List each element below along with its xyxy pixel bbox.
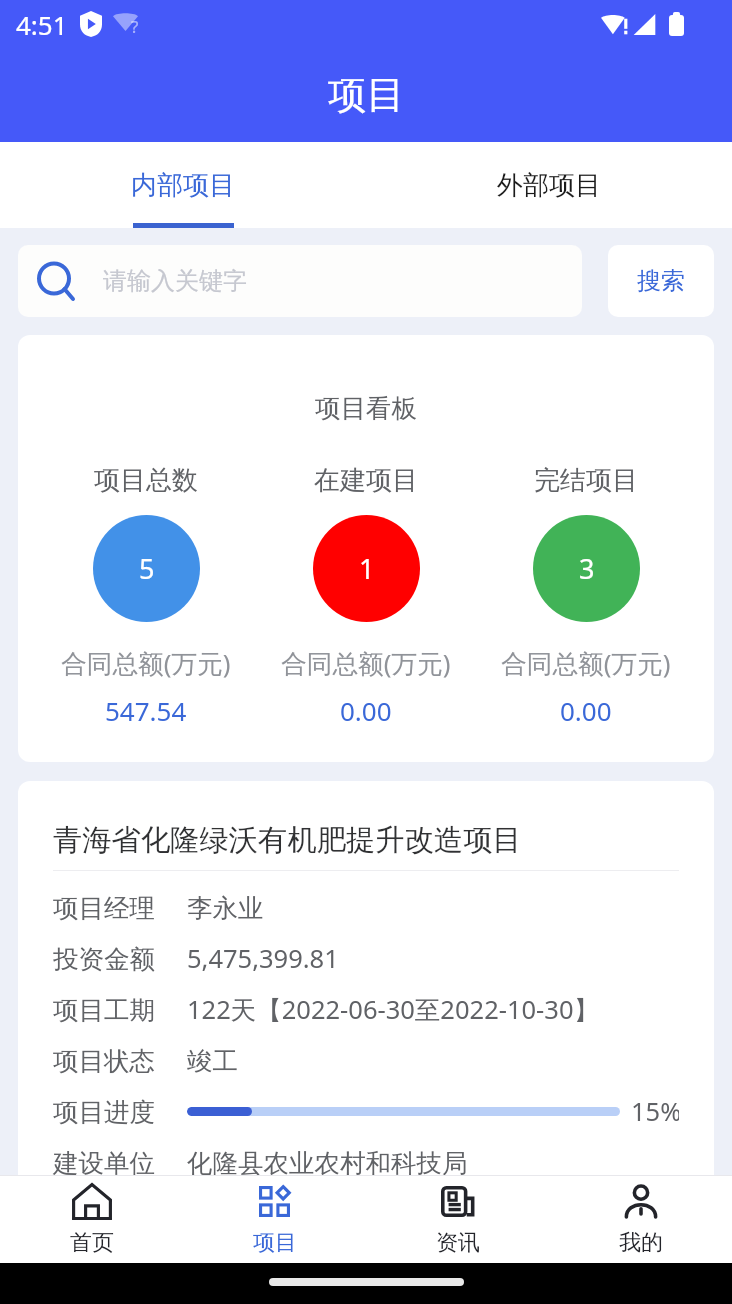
button[interactable]: 内部项目 xyxy=(0,142,366,228)
staticText: 建设单位 xyxy=(53,1147,187,1179)
staticText: 项目 xyxy=(328,71,405,120)
staticText: 化隆县农业农村和科技局 xyxy=(187,1147,468,1179)
staticText: 青海省化隆绿沃有机肥提升改造项目 xyxy=(53,822,522,859)
staticText: 合同总额(万元) xyxy=(281,646,451,681)
staticText: 5 xyxy=(139,550,155,587)
other: 首页 xyxy=(72,1183,112,1220)
staticText: 122天【2022-06-30至2022-10-30】 xyxy=(187,992,599,1027)
other: 搜索 xyxy=(37,261,75,301)
staticText: 外部项目 xyxy=(497,169,601,202)
other: 我的 xyxy=(624,1184,658,1218)
staticText: 搜索 xyxy=(637,266,685,296)
staticText: 项目看板 xyxy=(36,392,696,424)
staticText: 15% xyxy=(631,1094,679,1129)
button[interactable]: 搜索 xyxy=(608,245,714,317)
button[interactable]: 我的 xyxy=(549,1176,732,1263)
staticText: 项目工期 xyxy=(53,994,187,1026)
button[interactable]: 资讯 xyxy=(366,1176,549,1263)
staticText: 合同总额(万元) xyxy=(61,646,231,681)
staticText: 项目状态 xyxy=(53,1045,187,1077)
staticText: 内部项目 xyxy=(131,169,235,202)
staticText: 4:51 xyxy=(16,7,68,42)
staticText: 项目经理 xyxy=(53,892,187,924)
staticText: 首页 xyxy=(70,1229,114,1257)
staticText: 合同总额(万元) xyxy=(501,646,671,681)
staticText: 资讯 xyxy=(436,1229,480,1257)
staticText: 3 xyxy=(579,550,595,587)
staticText: 李永业 xyxy=(187,892,264,924)
staticText: 项目 xyxy=(253,1229,297,1257)
button[interactable]: 外部项目 xyxy=(366,142,732,228)
staticText: 我的 xyxy=(619,1229,663,1257)
staticText: 竣工 xyxy=(187,1045,238,1077)
staticText: 5,475,399.81 xyxy=(187,941,339,976)
staticText: 项目总数 xyxy=(94,464,198,497)
staticText: 在建项目 xyxy=(314,464,418,497)
button[interactable]: 青海省化隆绿沃有机肥提升改造项目 xyxy=(18,781,714,1304)
staticText: 完结项目 xyxy=(534,464,638,497)
staticText: 1 xyxy=(359,550,375,587)
staticText: ? xyxy=(131,15,139,38)
staticText: 投资金额 xyxy=(53,943,187,975)
staticText: 0.00 xyxy=(340,693,392,728)
staticText: 项目进度 xyxy=(53,1096,187,1128)
button[interactable]: 项目 xyxy=(183,1176,366,1263)
staticText: 547.54 xyxy=(105,693,187,728)
staticText: 请输入关键字 xyxy=(103,266,247,296)
staticText: 0.00 xyxy=(560,693,612,728)
button[interactable]: 搜索 xyxy=(18,245,582,317)
other: 资讯 xyxy=(441,1186,474,1217)
other: 项目 xyxy=(259,1186,290,1217)
button[interactable]: 首页 xyxy=(0,1176,183,1263)
